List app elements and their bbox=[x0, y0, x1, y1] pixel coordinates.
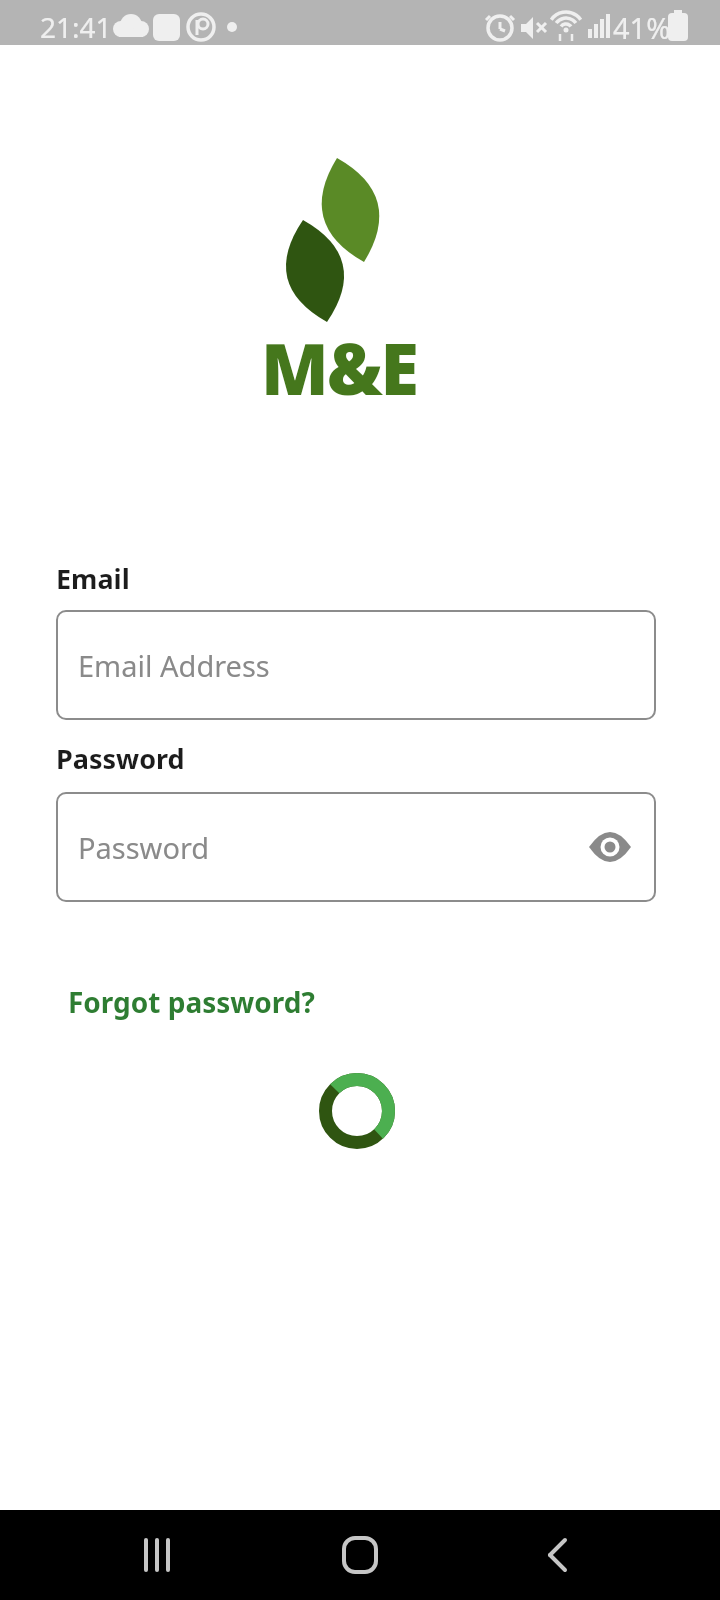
button[interactable] bbox=[528, 1525, 588, 1585]
button[interactable] bbox=[330, 1525, 390, 1585]
button[interactable] bbox=[127, 1525, 187, 1585]
button[interactable]: Email Address bbox=[56, 610, 656, 720]
staticText: Forgot password? bbox=[68, 983, 315, 1021]
staticText: 41% bbox=[613, 8, 671, 47]
staticText: M&E bbox=[261, 320, 418, 415]
staticText: 21:41 bbox=[40, 8, 112, 46]
button[interactable]: Password bbox=[56, 792, 656, 902]
staticText: Password bbox=[78, 828, 210, 867]
staticText: Password bbox=[56, 740, 185, 777]
staticText: Email Address bbox=[78, 646, 270, 685]
staticText: Email bbox=[56, 560, 130, 597]
button[interactable]: Forgot password? bbox=[68, 983, 315, 1021]
